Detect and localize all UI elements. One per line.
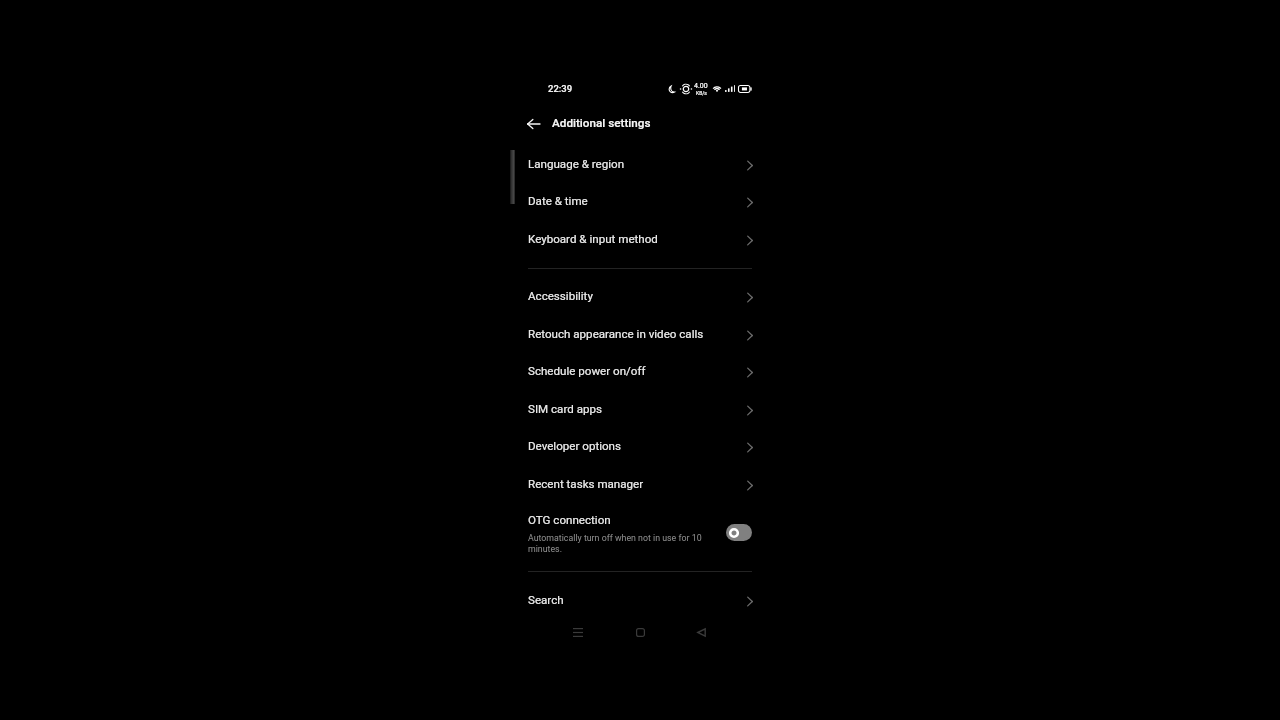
staticText: Schedule power on/off (528, 364, 646, 378)
staticText: Automatically turn off when not in use f… (528, 533, 720, 554)
button[interactable]: Recents (556, 614, 600, 650)
staticText: 4.00 (694, 82, 708, 90)
staticText: Retouch appearance in video calls (528, 327, 704, 341)
staticText: 22:39 (548, 83, 573, 94)
staticText: KB/s (696, 90, 707, 96)
button[interactable]: Toggle OTG connection (726, 524, 752, 541)
button[interactable]: Retouch appearance in video calls (510, 315, 770, 353)
staticText: Date & time (528, 194, 588, 208)
staticText: Keyboard & input method (528, 232, 658, 246)
button[interactable]: Back (521, 112, 545, 136)
button[interactable]: Home (618, 614, 662, 650)
button[interactable]: Recent tasks manager (510, 465, 770, 503)
staticText: OTG connection (528, 513, 611, 527)
staticText: Accessibility (528, 289, 593, 303)
staticText: Developer options (528, 439, 621, 453)
button[interactable]: Back (679, 614, 723, 650)
button[interactable]: Keyboard & input method (510, 220, 770, 258)
staticText: SIM card apps (528, 402, 602, 416)
staticText: Recent tasks manager (528, 477, 644, 491)
button[interactable]: Search (510, 581, 770, 619)
button[interactable]: OTG connection (510, 507, 770, 563)
button[interactable]: SIM card apps (510, 390, 770, 428)
button[interactable]: Language & region (510, 145, 770, 183)
button[interactable]: Accessibility (510, 277, 770, 315)
button[interactable]: Developer options (510, 427, 770, 465)
staticText: Language & region (528, 157, 625, 171)
button[interactable]: Schedule power on/off (510, 352, 770, 390)
staticText: Additional settings (552, 116, 651, 130)
staticText: Search (528, 593, 564, 607)
button[interactable]: Date & time (510, 182, 770, 220)
